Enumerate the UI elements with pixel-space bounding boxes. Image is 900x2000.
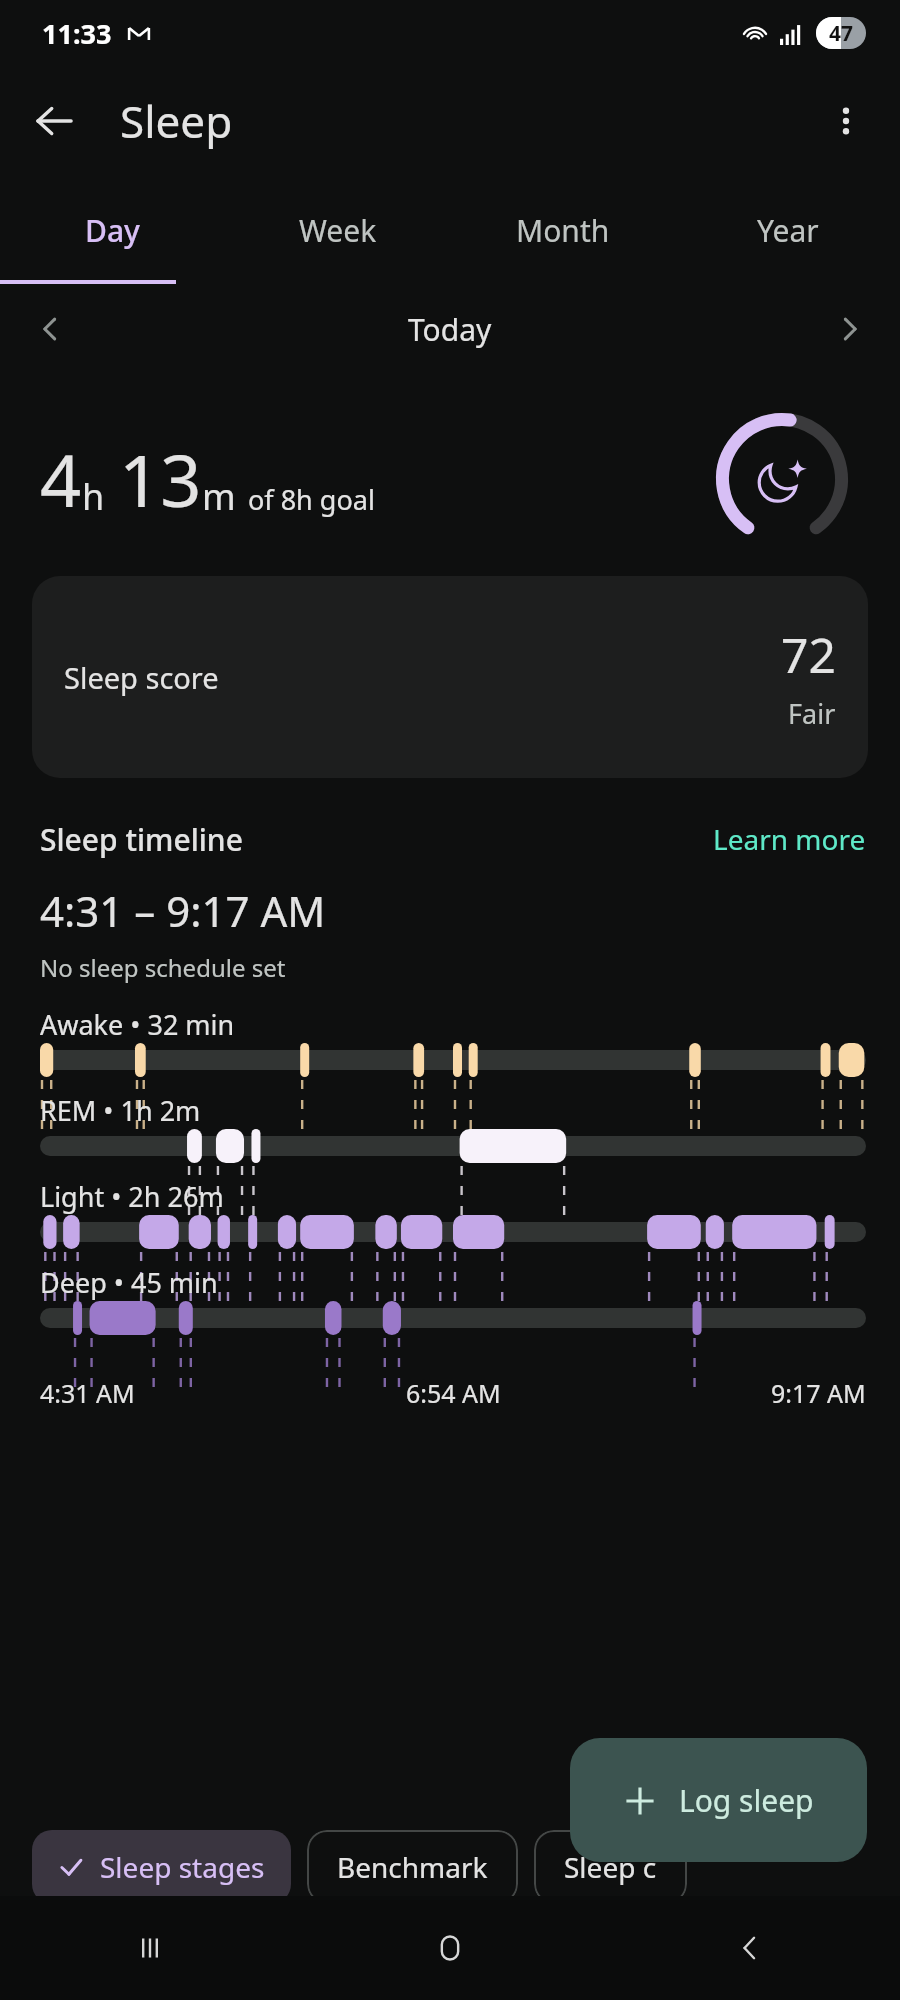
staticText: Sleep	[120, 91, 233, 151]
staticText: Day	[85, 210, 140, 251]
button[interactable]: Month	[450, 176, 675, 284]
staticText: Week	[299, 210, 377, 251]
button[interactable]: Home	[300, 1896, 600, 2000]
button[interactable]: Learn more	[705, 814, 874, 864]
staticText: 4:31 – 9:17 AM	[40, 882, 326, 939]
button[interactable]: More options	[814, 89, 878, 153]
staticText: Benchmark	[337, 1848, 488, 1886]
staticText: 13	[119, 430, 202, 528]
staticText: of 8h goal	[248, 481, 375, 518]
staticText: REM • 1h 2m	[40, 1092, 201, 1129]
button[interactable]: Year	[675, 176, 900, 284]
staticText: Sleep score	[64, 658, 219, 697]
button[interactable]: Sleep stages	[32, 1830, 291, 1904]
button[interactable]: Day	[0, 176, 225, 284]
button[interactable]: Previous day	[20, 299, 80, 359]
button[interactable]: Sleep score	[32, 576, 868, 778]
staticText: Sleep timeline	[40, 819, 243, 860]
staticText: 11:33	[42, 15, 112, 52]
staticText: 4:31 AM	[40, 1376, 135, 1410]
staticText: 47	[829, 19, 854, 48]
button[interactable]: Recents	[0, 1896, 300, 2000]
staticText: Log sleep	[679, 1780, 814, 1821]
button[interactable]: Log sleep	[570, 1738, 867, 1862]
staticText: 6:54 AM	[406, 1376, 501, 1410]
staticText: Month	[516, 210, 610, 251]
button[interactable]: Week	[225, 176, 450, 284]
staticText: Today	[408, 309, 492, 350]
button[interactable]: Back	[22, 89, 86, 153]
staticText: No sleep schedule set	[40, 951, 286, 984]
staticText: Learn more	[713, 820, 866, 858]
staticText: m	[202, 472, 236, 521]
staticText: Awake • 32 min	[40, 1006, 235, 1043]
staticText: 4	[40, 430, 82, 528]
staticText: h	[82, 472, 105, 521]
button[interactable]: Benchmark	[307, 1830, 518, 1904]
staticText: 72	[781, 622, 836, 687]
button[interactable]: Back	[600, 1896, 900, 2000]
staticText: Sleep stages	[100, 1848, 265, 1886]
staticText: Sleep c	[564, 1848, 657, 1886]
button[interactable]: Sleep c	[534, 1830, 687, 1904]
staticText: Deep • 45 min	[40, 1264, 218, 1301]
staticText: Light • 2h 26m	[40, 1178, 224, 1215]
button[interactable]: Next day	[820, 299, 880, 359]
staticText: Year	[757, 210, 819, 251]
staticText: 9:17 AM	[771, 1376, 866, 1410]
staticText: Fair	[788, 695, 836, 732]
